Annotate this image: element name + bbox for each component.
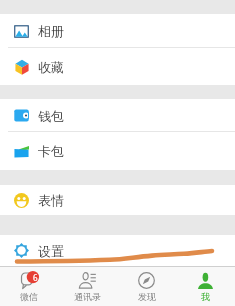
staticText: 通讯录 bbox=[74, 291, 101, 302]
button[interactable]: 表情 bbox=[0, 185, 235, 215]
staticText: 发现 bbox=[138, 291, 156, 302]
staticText: 设置 bbox=[38, 243, 64, 259]
staticText: 微信 bbox=[20, 291, 38, 302]
button[interactable]: 相册 bbox=[0, 14, 235, 48]
staticText: 相册 bbox=[38, 23, 64, 39]
button[interactable]: 6 bbox=[0, 267, 58, 306]
staticText: 收藏 bbox=[38, 59, 64, 75]
staticText: 钱包 bbox=[38, 108, 64, 124]
staticText: 卡包 bbox=[38, 143, 64, 159]
button[interactable]: 卡包 bbox=[0, 132, 235, 170]
button[interactable]: 通讯录 bbox=[58, 267, 117, 306]
button[interactable]: 发现 bbox=[117, 267, 176, 306]
button[interactable]: 收藏 bbox=[0, 48, 235, 85]
button[interactable]: 钱包 bbox=[0, 99, 235, 132]
staticText: 我 bbox=[201, 291, 210, 302]
staticText: 6 bbox=[33, 272, 38, 283]
button[interactable]: 设置 bbox=[0, 235, 235, 266]
staticText: 表情 bbox=[38, 192, 64, 208]
button[interactable]: 我 bbox=[176, 267, 235, 306]
